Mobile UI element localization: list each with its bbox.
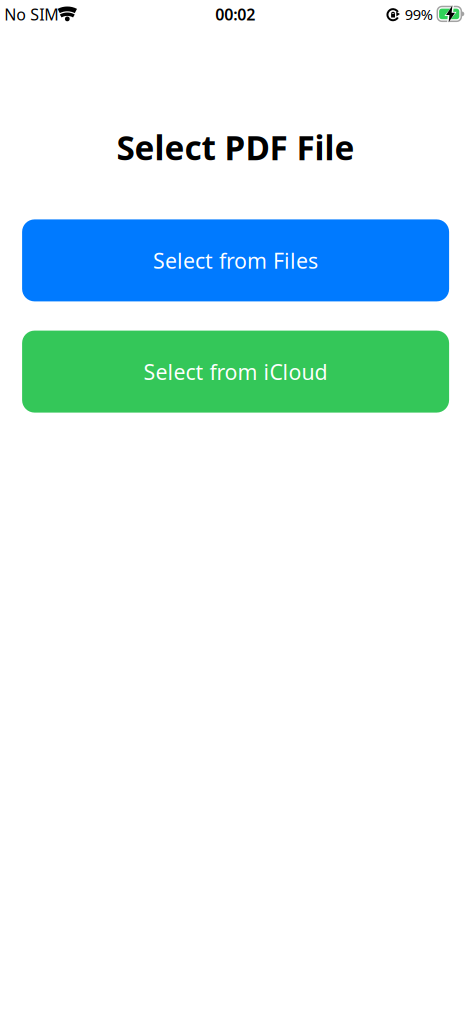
staticText: 99%	[405, 5, 433, 24]
staticText: Select from Files	[153, 246, 318, 274]
staticText: Select from iCloud	[144, 357, 328, 386]
button[interactable]: Select from Files	[22, 219, 449, 301]
staticText: No SIM	[4, 4, 59, 25]
staticText: 00:02	[215, 4, 255, 25]
button[interactable]: Select from iCloud	[22, 331, 449, 413]
staticText: Select PDF File	[116, 125, 354, 169]
